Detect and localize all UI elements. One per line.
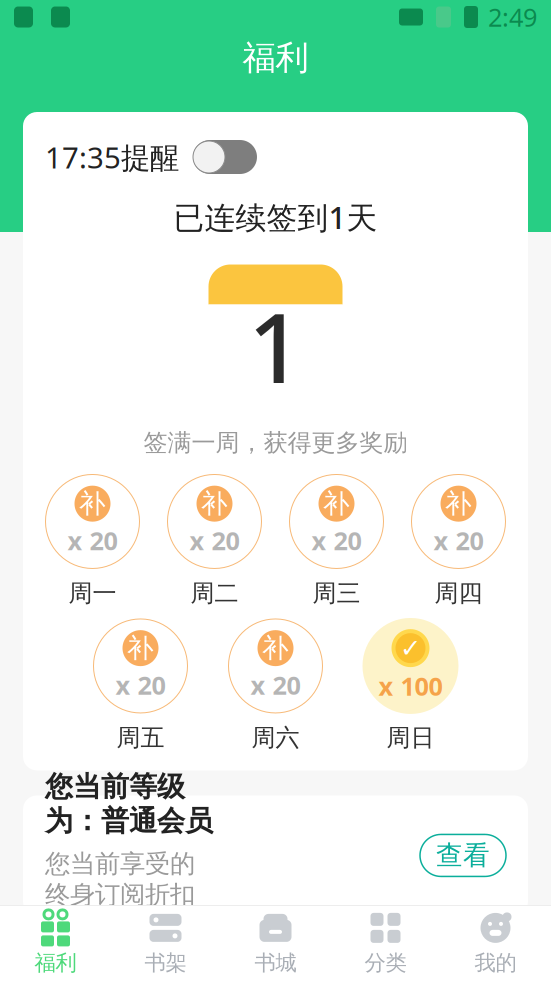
button[interactable]: 福利 <box>0 907 110 979</box>
button[interactable]: 补 <box>31 473 153 608</box>
staticText: 您当前享受的终身订阅折扣为：无折扣 <box>45 848 195 941</box>
staticText: x 20 <box>67 524 117 557</box>
staticText: 补 <box>323 487 350 520</box>
staticText: 福利 <box>242 37 308 78</box>
staticText: 补 <box>445 487 472 520</box>
button[interactable]: ✓ <box>349 618 471 752</box>
button[interactable]: 补 <box>275 473 397 608</box>
button[interactable]: 补 <box>397 473 519 608</box>
staticText: x 20 <box>311 524 361 557</box>
staticText: 17:35提醒 <box>45 137 179 176</box>
button[interactable]: 我的 <box>440 907 550 979</box>
staticText: 周二 <box>190 578 238 608</box>
staticText: x 20 <box>433 524 483 557</box>
staticText: 福利 <box>34 950 76 976</box>
staticText: 周五 <box>116 723 164 752</box>
staticText: 周六 <box>251 723 299 752</box>
staticText: 周四 <box>434 578 482 608</box>
staticText: 1 <box>248 282 303 410</box>
staticText: 书架 <box>144 950 186 976</box>
staticText: 周三 <box>312 578 360 608</box>
button[interactable]: 书城 <box>220 907 330 979</box>
staticText: 查看 <box>436 839 490 872</box>
button[interactable]: 17:35 提醒开关 <box>193 140 257 174</box>
staticText: 已连续签到1天 <box>173 197 377 237</box>
staticText: 补 <box>127 632 154 665</box>
button[interactable]: 补 <box>214 618 336 752</box>
staticText: 我的 <box>474 950 516 976</box>
staticText: x 100 <box>378 669 442 703</box>
button[interactable]: 查看 <box>420 834 506 876</box>
staticText: 分类 <box>364 950 406 976</box>
staticText: ✓ <box>400 634 421 663</box>
staticText: 补 <box>262 632 289 665</box>
staticText: x 20 <box>115 668 165 702</box>
staticText: 补 <box>79 487 106 520</box>
button[interactable]: 补 <box>153 473 275 608</box>
staticText: 签满一周，获得更多奖励 <box>143 428 407 457</box>
staticText: 周一 <box>68 578 116 608</box>
button[interactable]: 分类 <box>330 907 440 979</box>
staticText: 2:49 <box>488 0 537 34</box>
staticText: 补 <box>201 487 228 520</box>
staticText: x 20 <box>250 668 300 702</box>
staticText: 书城 <box>254 950 296 976</box>
button[interactable]: 补 <box>79 618 201 752</box>
staticText: 周日 <box>386 723 434 752</box>
button[interactable]: 书架 <box>110 907 220 979</box>
staticText: 您当前等级为：普通会员 <box>45 769 213 838</box>
staticText: x 20 <box>189 524 239 557</box>
